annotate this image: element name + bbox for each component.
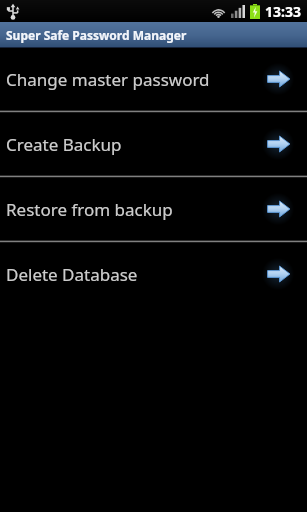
staticText: Super Safe Password Manager bbox=[6, 27, 187, 43]
button[interactable]: Change master password bbox=[0, 48, 307, 110]
staticText: Restore from backup bbox=[6, 198, 263, 221]
button[interactable]: Restore from backup bbox=[0, 178, 307, 240]
staticText: Delete Database bbox=[6, 263, 263, 286]
staticText: 13:33 bbox=[265, 2, 301, 21]
staticText: Change master password bbox=[6, 68, 263, 91]
other: Delete Database bbox=[263, 262, 293, 286]
other: Change master password bbox=[263, 67, 293, 91]
staticText: Create Backup bbox=[6, 133, 263, 156]
button[interactable]: Delete Database bbox=[0, 243, 307, 305]
other: Create Backup bbox=[263, 132, 293, 156]
button[interactable]: Create Backup bbox=[0, 113, 307, 175]
other: Restore from backup bbox=[263, 197, 293, 221]
